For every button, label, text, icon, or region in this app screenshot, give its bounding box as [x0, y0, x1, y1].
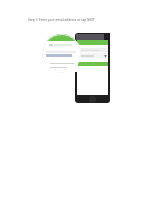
- button[interactable]: [46, 59, 78, 72]
- staticText: Step 1: Enter your email address or tap …: [28, 18, 95, 22]
- button[interactable]: Step 1: Enter your email address or tap …: [28, 18, 95, 22]
- button[interactable]: [75, 33, 110, 103]
